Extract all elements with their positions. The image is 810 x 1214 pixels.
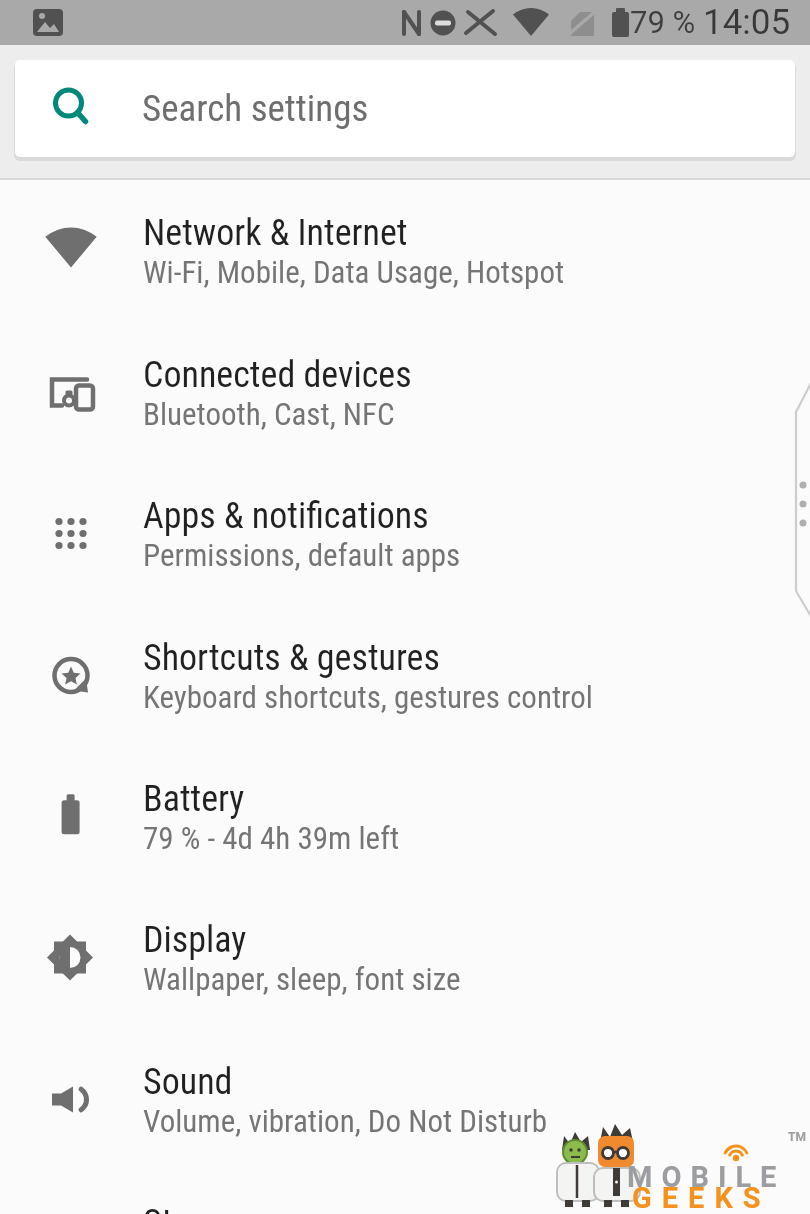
staticText: 79 % (630, 4, 696, 40)
staticText: Battery (143, 778, 245, 820)
button[interactable]: Network & Internet (0, 180, 810, 321)
button[interactable]: Sound (0, 1029, 810, 1170)
staticText: Keyboard shortcuts, gestures control (143, 679, 593, 715)
staticText: 79 % - 4d 4h 39m left (143, 820, 400, 856)
staticText: Permissions, default apps (143, 537, 461, 573)
staticText: Wi-Fi, Mobile, Data Usage, Hotspot (143, 254, 565, 290)
staticText: Storage (143, 1202, 253, 1214)
staticText: GEEKS (632, 1181, 771, 1214)
button[interactable]: Display (0, 887, 810, 1028)
button[interactable]: Battery (0, 746, 810, 887)
button[interactable]: Connected devices (0, 322, 810, 463)
staticText: 14:05 (703, 2, 791, 43)
staticText: MOBILE (627, 1160, 786, 1194)
button[interactable]: Apps & notifications (0, 463, 810, 604)
staticText: TM (788, 1130, 806, 1144)
staticText: Apps & notifications (143, 495, 429, 537)
staticText: Volume, vibration, Do Not Disturb (143, 1103, 548, 1139)
button[interactable]: Shortcuts & gestures (0, 605, 810, 746)
button[interactable]: Storage (0, 1170, 810, 1214)
staticText: Sound (143, 1061, 233, 1103)
staticText: Search settings (142, 87, 369, 130)
button[interactable]: Search settings (15, 60, 795, 157)
staticText: Display (143, 919, 247, 961)
staticText: Network & Internet (143, 212, 408, 254)
staticText: Connected devices (143, 354, 412, 396)
staticText: Bluetooth, Cast, NFC (143, 396, 395, 432)
staticText: Shortcuts & gestures (143, 637, 440, 679)
staticText: Wallpaper, sleep, font size (143, 961, 461, 997)
